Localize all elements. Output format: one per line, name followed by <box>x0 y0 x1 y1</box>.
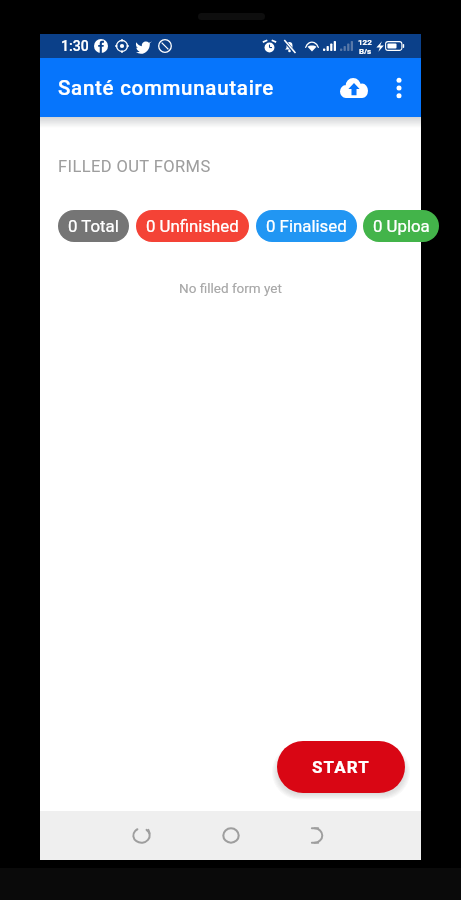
button[interactable]: 0 Total <box>58 210 129 242</box>
button[interactable]: START <box>277 741 405 793</box>
button[interactable]: 0 Unfinished <box>136 210 249 242</box>
staticText: No filled form yet <box>40 280 421 296</box>
staticText: Santé communautaire <box>58 76 275 100</box>
staticText: B/s <box>359 47 372 54</box>
button[interactable]: Back <box>117 811 165 860</box>
button[interactable]: 0 Finalised <box>256 210 357 242</box>
staticText: FILLED OUT FORMS <box>58 157 211 176</box>
staticText: 0 Uploaded <box>373 216 429 236</box>
staticText: 0 Unfinished <box>146 216 239 236</box>
staticText: START <box>312 757 370 777</box>
button[interactable]: More options <box>378 67 420 109</box>
staticText: 1:30 <box>61 38 89 54</box>
staticText: 122 <box>358 38 372 47</box>
button[interactable]: 0 Uploaded <box>363 210 439 242</box>
staticText: 0 Finalised <box>266 216 347 236</box>
button[interactable]: Recent apps <box>296 811 344 860</box>
button[interactable]: Home <box>207 811 255 860</box>
staticText: 0 Total <box>68 216 119 236</box>
button[interactable]: Upload forms <box>330 64 378 112</box>
